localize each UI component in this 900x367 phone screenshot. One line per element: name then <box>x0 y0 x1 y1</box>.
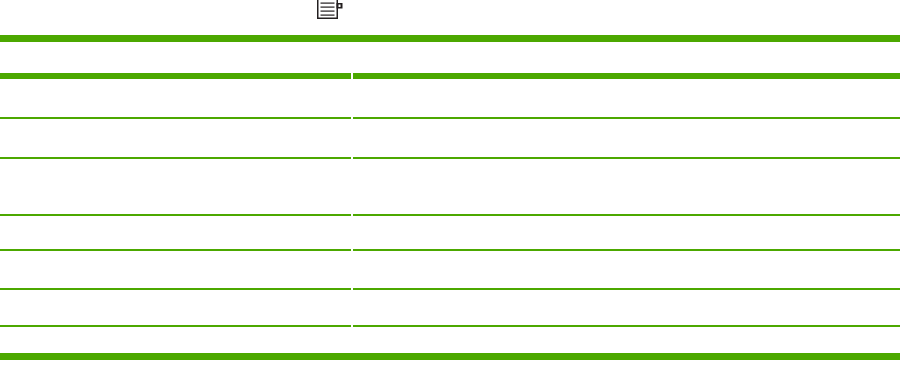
button[interactable]: Document <box>316 0 344 20</box>
